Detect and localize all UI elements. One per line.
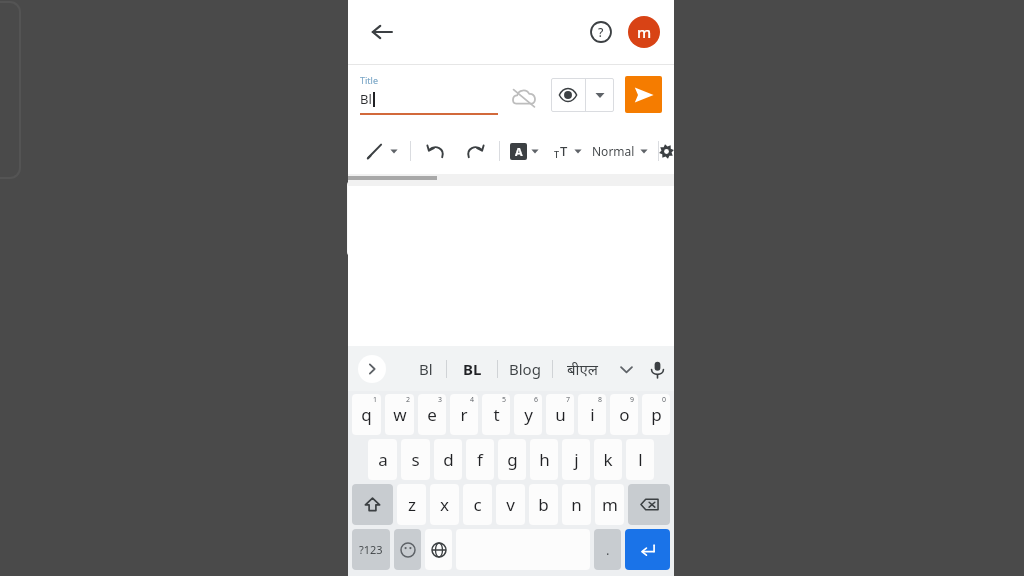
staticText: T	[560, 142, 568, 160]
button[interactable]: g	[498, 439, 526, 480]
staticText: r	[460, 403, 468, 426]
staticText: Normal	[592, 143, 635, 159]
staticText: c	[473, 493, 482, 516]
staticText: u	[555, 403, 566, 426]
button[interactable]: Normal	[592, 133, 648, 169]
button[interactable]: o	[610, 394, 638, 435]
button[interactable]: BL	[447, 346, 497, 391]
staticText: v	[506, 493, 515, 516]
staticText: f	[477, 448, 483, 471]
button[interactable]: Back	[362, 12, 402, 52]
button[interactable]: Enter	[625, 529, 670, 570]
staticText: 6	[534, 395, 539, 405]
staticText: ?123	[359, 542, 383, 557]
button[interactable]: z	[397, 484, 426, 525]
staticText: h	[539, 448, 550, 471]
button[interactable]: More suggestions	[611, 354, 641, 384]
button[interactable]: Redo	[459, 136, 489, 166]
staticText: o	[619, 403, 630, 426]
button[interactable]: a	[368, 439, 397, 480]
button[interactable]: h	[530, 439, 558, 480]
staticText: y	[524, 403, 533, 426]
staticText: t	[493, 403, 500, 426]
button[interactable]: e	[418, 394, 446, 435]
staticText: s	[411, 448, 420, 471]
button[interactable]: k	[594, 439, 622, 480]
button[interactable]: r	[450, 394, 478, 435]
staticText: a	[378, 448, 388, 471]
button[interactable]: Settings	[659, 134, 674, 168]
button[interactable]: q	[352, 394, 381, 435]
button[interactable]: l	[626, 439, 654, 480]
button[interactable]: s	[401, 439, 430, 480]
button[interactable]: j	[562, 439, 590, 480]
button[interactable]: x	[430, 484, 459, 525]
staticText: x	[440, 493, 449, 516]
other: Text color	[510, 143, 527, 160]
staticText: T	[554, 148, 560, 160]
button[interactable]: m	[595, 484, 624, 525]
button[interactable]: बीएल	[553, 346, 611, 391]
button[interactable]: w	[385, 394, 414, 435]
staticText: Title	[360, 74, 378, 86]
button[interactable]: Shift	[352, 484, 393, 525]
button[interactable]: u	[546, 394, 574, 435]
button[interactable]: i	[578, 394, 606, 435]
staticText: A	[515, 144, 523, 159]
staticText: 3	[438, 395, 443, 405]
button[interactable]: Offline	[505, 79, 543, 117]
button[interactable]: Help	[582, 13, 620, 51]
button[interactable]: t	[482, 394, 510, 435]
button[interactable]: Emoji	[394, 529, 421, 570]
button[interactable]: Bl	[406, 346, 446, 391]
staticText: m	[602, 493, 618, 516]
staticText: BL	[463, 359, 482, 379]
button[interactable]: f	[466, 439, 494, 480]
staticText: ?	[598, 24, 604, 40]
staticText: 8	[598, 395, 603, 405]
staticText: p	[651, 403, 662, 426]
button[interactable]: v	[496, 484, 525, 525]
staticText: n	[571, 493, 582, 516]
button[interactable]: y	[514, 394, 542, 435]
staticText: g	[507, 448, 518, 471]
button[interactable]: b	[529, 484, 558, 525]
staticText: 9	[630, 395, 635, 405]
staticText: 7	[566, 395, 571, 405]
button[interactable]: Undo	[421, 136, 451, 166]
staticText: b	[538, 493, 549, 516]
button[interactable]: Account	[628, 16, 660, 48]
staticText: 4	[470, 395, 475, 405]
button[interactable]: Pen	[362, 133, 400, 169]
staticText: 5	[502, 395, 507, 405]
staticText: l	[638, 448, 643, 471]
staticText: बीएल	[567, 359, 598, 379]
staticText: d	[443, 448, 454, 471]
staticText: k	[603, 448, 613, 471]
staticText: e	[427, 403, 437, 426]
button[interactable]: .	[594, 529, 621, 570]
staticText: w	[393, 403, 407, 426]
staticText: 2	[406, 395, 411, 405]
button[interactable]: n	[562, 484, 591, 525]
button[interactable]: d	[434, 439, 462, 480]
staticText: Bl	[419, 359, 433, 379]
staticText: Blog	[509, 359, 541, 379]
button[interactable]: Text size	[551, 133, 582, 169]
button[interactable]: p	[642, 394, 670, 435]
button[interactable]: Blog	[498, 346, 552, 391]
button[interactable]	[551, 78, 614, 112]
button[interactable]: Voice input	[641, 353, 673, 385]
staticText: z	[408, 493, 416, 516]
button[interactable]: c	[463, 484, 492, 525]
button[interactable]: Backspace	[628, 484, 670, 525]
other: Text size	[551, 141, 571, 161]
button[interactable]: Change language	[425, 529, 452, 570]
staticText: .	[606, 541, 610, 559]
button[interactable]: Publish	[625, 76, 662, 113]
staticText: 0	[662, 395, 667, 405]
button[interactable]: Expand suggestions	[358, 355, 386, 383]
button[interactable]: ?123	[352, 529, 390, 570]
button[interactable]: Text color	[510, 133, 539, 169]
